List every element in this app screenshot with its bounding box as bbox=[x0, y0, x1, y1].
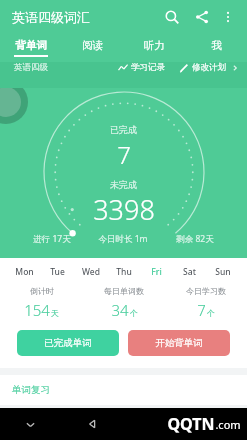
staticText: 剩余 82天 bbox=[176, 233, 214, 245]
button[interactable]: Home bbox=[123, 408, 185, 440]
button[interactable]: 已完成单词 bbox=[17, 330, 119, 356]
button[interactable]: 每日单词数 bbox=[83, 286, 165, 320]
staticText: 已完成单词 bbox=[44, 337, 92, 349]
button[interactable]: 听力 bbox=[123, 34, 185, 62]
staticText: 倒计时 bbox=[30, 286, 54, 296]
button[interactable]: Sat bbox=[173, 266, 206, 278]
button[interactable]: 开始背单词 bbox=[128, 330, 230, 356]
button[interactable]: Mon bbox=[8, 266, 41, 278]
button[interactable]: Sun bbox=[206, 266, 239, 278]
staticText: 英语四级词汇 bbox=[12, 9, 90, 25]
staticText: Mon bbox=[15, 266, 34, 278]
staticText: 听力 bbox=[144, 39, 165, 52]
button[interactable]: Search bbox=[159, 4, 185, 30]
button[interactable]: Tue bbox=[41, 266, 74, 278]
staticText: 未完成 bbox=[110, 179, 137, 190]
button[interactable]: Thu bbox=[107, 266, 140, 278]
staticText: Fri bbox=[151, 266, 162, 278]
button[interactable]: 倒计时 bbox=[0, 286, 83, 320]
button[interactable]: 修改计划 bbox=[179, 62, 226, 73]
staticText: 个 bbox=[130, 308, 138, 318]
button[interactable]: 我 bbox=[185, 34, 247, 62]
button[interactable]: 学习记录 bbox=[118, 62, 165, 73]
staticText: QQTN bbox=[167, 413, 215, 435]
staticText: 单词复习 bbox=[12, 384, 50, 396]
staticText: 学习记录 bbox=[131, 62, 165, 73]
button[interactable]: 背单词 bbox=[0, 34, 61, 62]
staticText: 我 bbox=[211, 39, 222, 52]
staticText: 7 bbox=[117, 138, 131, 171]
button[interactable]: 单词复习 bbox=[12, 384, 247, 396]
staticText: 修改计划 bbox=[192, 62, 226, 73]
staticText: Wed bbox=[82, 266, 100, 278]
staticText: 今日学习数 bbox=[186, 286, 226, 296]
staticText: 34 bbox=[111, 300, 129, 320]
button[interactable]: 今日学习数 bbox=[165, 286, 247, 320]
button[interactable]: Back bbox=[61, 408, 123, 440]
button[interactable]: More bbox=[231, 64, 239, 72]
button[interactable]: 阅读 bbox=[61, 34, 123, 62]
button[interactable]: Wed bbox=[74, 266, 107, 278]
button[interactable]: Recents bbox=[185, 408, 247, 440]
staticText: 英语四级 bbox=[14, 62, 48, 73]
staticText: 已完成 bbox=[110, 124, 137, 135]
staticText: 进行 17天 bbox=[33, 233, 71, 245]
staticText: 背单词 bbox=[15, 39, 47, 52]
staticText: 154 bbox=[24, 300, 50, 320]
staticText: 天 bbox=[51, 308, 59, 318]
staticText: 个 bbox=[207, 308, 215, 318]
staticText: Sat bbox=[183, 266, 196, 278]
staticText: 阅读 bbox=[82, 39, 103, 52]
staticText: Thu bbox=[116, 266, 132, 278]
staticText: 开始背单词 bbox=[155, 337, 203, 349]
button[interactable]: Hide keyboard bbox=[0, 408, 61, 440]
button[interactable]: Fri bbox=[140, 266, 173, 278]
staticText: 今日时长 1m bbox=[98, 233, 148, 245]
staticText: 7 bbox=[197, 300, 206, 320]
staticText: Sun bbox=[215, 266, 231, 278]
button[interactable]: More options bbox=[217, 6, 239, 28]
staticText: Tue bbox=[50, 266, 65, 278]
button[interactable]: Share bbox=[189, 4, 215, 30]
staticText: 3398 bbox=[93, 191, 155, 224]
staticText: .com bbox=[215, 417, 241, 432]
staticText: 每日单词数 bbox=[104, 286, 144, 296]
